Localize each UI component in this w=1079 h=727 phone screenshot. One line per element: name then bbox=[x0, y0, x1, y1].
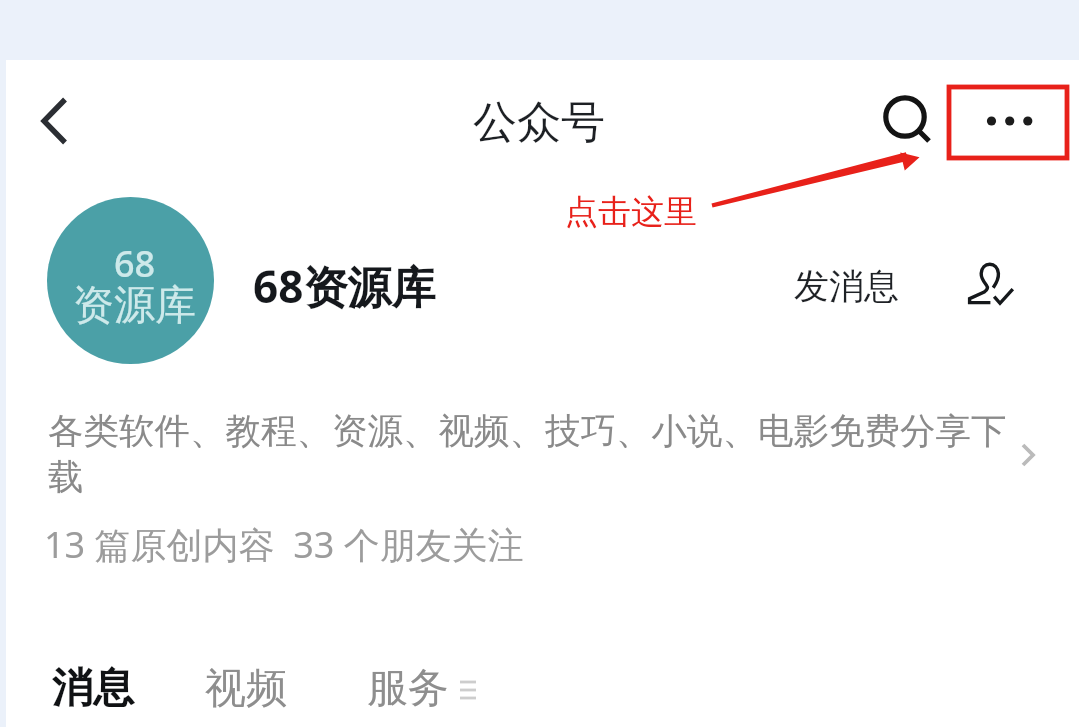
button[interactable]: 各类软件、教程、资源、视频、技巧、小说、电影免费分享下载 bbox=[6, 400, 1079, 580]
staticText: 视频 bbox=[205, 663, 287, 715]
staticText: 68资源库 bbox=[253, 256, 436, 316]
staticText: 13 篇原创内容 33 个朋友关注 bbox=[44, 520, 524, 569]
staticText: 消息 bbox=[52, 663, 134, 715]
button[interactable]: 68 bbox=[6, 188, 1079, 368]
button[interactable]: Back bbox=[12, 89, 76, 153]
button[interactable]: 视频 bbox=[201, 653, 291, 725]
staticText: 发消息 bbox=[794, 264, 899, 308]
staticText: 68 bbox=[114, 239, 156, 288]
button[interactable]: 消息 bbox=[48, 653, 138, 725]
staticText: 各类软件、教程、资源、视频、技巧、小说、电影免费分享下载 bbox=[48, 409, 1020, 500]
staticText: 点击这里 bbox=[565, 191, 697, 233]
button[interactable]: 服务 bbox=[363, 653, 453, 725]
button[interactable]: Search bbox=[873, 85, 937, 149]
staticText: 公众号 bbox=[473, 95, 605, 150]
staticText: 服务 bbox=[367, 663, 449, 715]
button[interactable]: More options bbox=[949, 85, 1077, 157]
button[interactable]: Following bbox=[963, 262, 1025, 324]
staticText: 资源库 bbox=[73, 280, 196, 332]
button[interactable]: 发消息 bbox=[782, 254, 911, 318]
